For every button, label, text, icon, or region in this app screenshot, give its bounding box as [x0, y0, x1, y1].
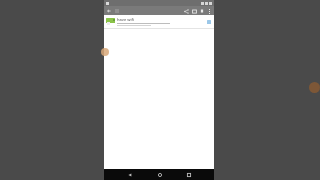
button[interactable]: More options	[206, 8, 213, 15]
button[interactable]: Archive	[198, 7, 206, 15]
button[interactable]: have wifi	[104, 15, 214, 28]
button[interactable]: Share	[182, 7, 190, 15]
button[interactable]: Delete	[190, 7, 198, 15]
button[interactable]: Select item	[205, 18, 212, 25]
button[interactable]: Back	[125, 170, 134, 179]
button[interactable]: Home	[155, 170, 164, 179]
button[interactable]: Select all	[113, 7, 120, 14]
staticText: have wifi	[117, 17, 135, 22]
button[interactable]: Recent apps	[184, 170, 193, 179]
button[interactable]: Navigate up	[105, 7, 112, 14]
